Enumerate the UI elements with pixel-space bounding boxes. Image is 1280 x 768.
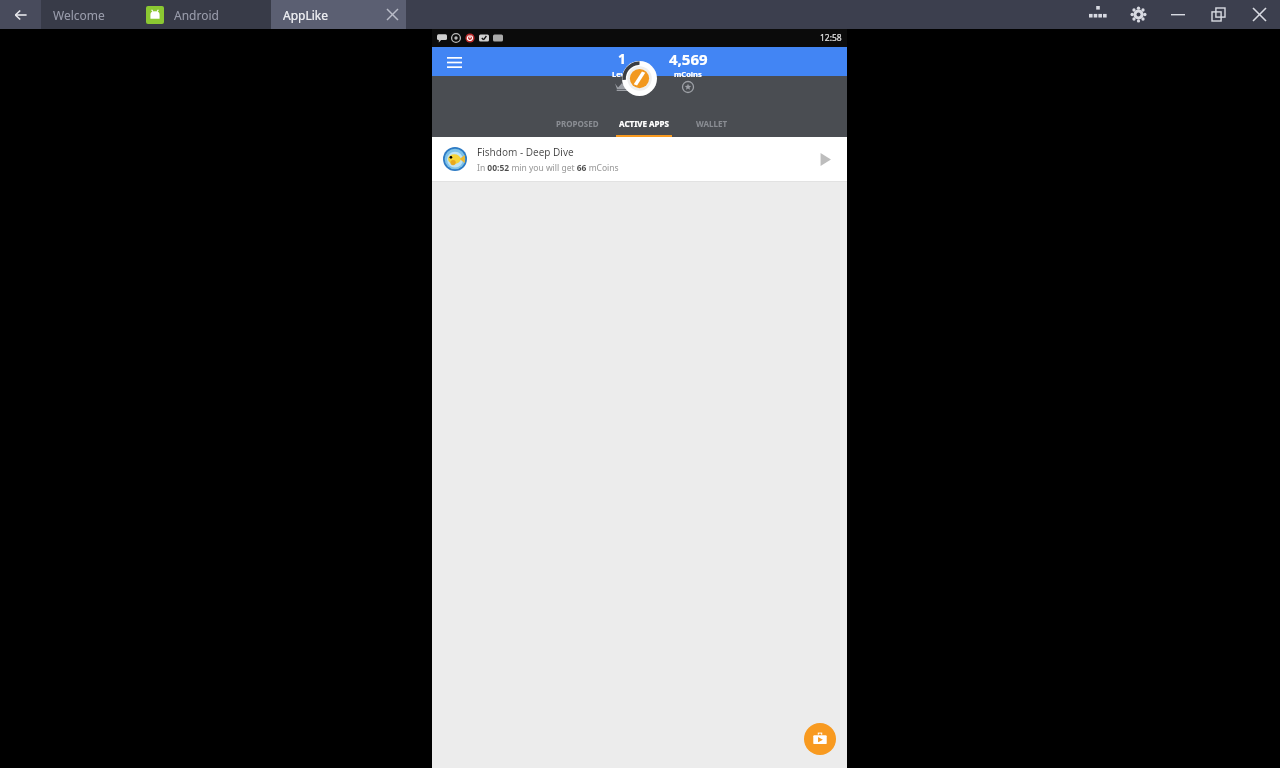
button[interactable]: Settings: [1118, 0, 1158, 29]
staticText: 1: [618, 49, 627, 68]
button[interactable]: AppLike: [271, 0, 406, 29]
button[interactable]: Profile progress: [622, 61, 657, 96]
button[interactable]: PROPOSED: [543, 109, 611, 137]
button[interactable]: Close: [1238, 0, 1280, 29]
staticText: mCoins: [674, 69, 702, 79]
button[interactable]: 1: [600, 49, 644, 91]
staticText: ACTIVE APPS: [619, 118, 669, 129]
staticText: Level: [612, 69, 632, 79]
button[interactable]: Get more apps: [804, 723, 836, 755]
staticText: 12:58: [820, 32, 842, 44]
staticText: In 00:52 min you will get 66 mCoins: [477, 162, 619, 174]
staticText: Android: [174, 7, 219, 23]
button[interactable]: Play: [814, 148, 836, 170]
staticText: Fishdom - Deep Dive: [477, 145, 574, 159]
button[interactable]: 4,569: [658, 49, 718, 93]
staticText: PROPOSED: [556, 118, 599, 129]
button[interactable]: ACTIVE APPS: [611, 109, 677, 137]
button[interactable]: Restore: [1198, 0, 1238, 29]
button[interactable]: Fishdom - Deep Dive: [432, 137, 847, 181]
button[interactable]: Minimize: [1158, 0, 1198, 29]
button[interactable]: Welcome: [41, 0, 134, 29]
button[interactable]: Layout: [1078, 0, 1118, 29]
staticText: WALLET: [696, 118, 727, 129]
button[interactable]: Menu: [442, 50, 466, 74]
staticText: 4,569: [669, 49, 708, 69]
button[interactable]: Android: [134, 0, 271, 29]
button[interactable]: WALLET: [677, 109, 745, 137]
button[interactable]: Back: [0, 0, 41, 29]
staticText: Welcome: [53, 7, 105, 23]
staticText: AppLike: [283, 7, 328, 23]
